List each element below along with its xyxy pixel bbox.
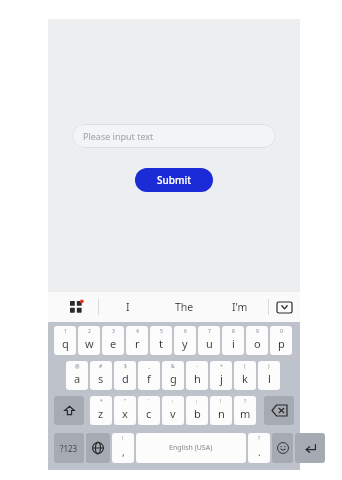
button[interactable]: 8 [222, 326, 244, 355]
staticText: i [232, 336, 235, 351]
staticText: ) [268, 363, 270, 370]
staticText: @ [75, 363, 80, 370]
button[interactable]: 4 [126, 326, 148, 355]
staticText: x [122, 406, 128, 421]
button[interactable]: 1 [54, 326, 76, 355]
button[interactable]: 5 [150, 326, 172, 355]
staticText: # [99, 363, 103, 370]
button[interactable]: 3 [102, 326, 124, 355]
button[interactable]: * [90, 396, 112, 425]
button[interactable]: Submit [135, 168, 213, 192]
button[interactable]: ' [138, 396, 160, 425]
staticText: u [206, 336, 213, 351]
staticText: v [170, 406, 176, 421]
staticText: . [258, 445, 261, 459]
staticText: English (USA) [169, 443, 213, 453]
button[interactable]: Change language [86, 433, 110, 463]
staticText: * [100, 398, 103, 405]
staticText: $ [124, 363, 127, 370]
button[interactable]: ; [186, 396, 208, 425]
button[interactable]: + [210, 361, 232, 390]
staticText: 8 [232, 328, 235, 335]
button[interactable]: Keyboard options [58, 292, 94, 322]
button[interactable]: ) [258, 361, 280, 390]
button[interactable]: $ [114, 361, 136, 390]
button[interactable]: ( [234, 361, 256, 390]
staticText: o [254, 336, 261, 351]
staticText: y [182, 336, 188, 351]
button[interactable]: I'm [212, 292, 268, 322]
button[interactable]: 0 [270, 326, 292, 355]
button[interactable]: English (USA) [136, 433, 246, 463]
staticText: n [218, 406, 225, 421]
button[interactable]: _ [138, 361, 160, 390]
staticText: 9 [256, 328, 259, 335]
staticText: Submit [157, 173, 191, 187]
button[interactable]: ?123 [54, 433, 84, 463]
staticText: c [146, 406, 152, 421]
button[interactable]: Enter [295, 433, 325, 463]
staticText: 2 [88, 328, 91, 335]
button[interactable]: ! [210, 396, 232, 425]
button[interactable]: 2 [78, 326, 100, 355]
staticText: p [278, 336, 285, 351]
staticText: 4 [136, 328, 139, 335]
staticText: t [159, 336, 163, 351]
button[interactable]: I [100, 292, 156, 322]
staticText: s [98, 371, 104, 386]
staticText: ? [244, 398, 247, 405]
staticText: f [147, 371, 151, 386]
button[interactable]: Backspace [264, 396, 294, 425]
staticText: a [74, 371, 81, 386]
staticText: ! [220, 398, 222, 405]
staticText: m [240, 406, 251, 421]
staticText: The [175, 300, 194, 314]
button[interactable]: " [114, 396, 136, 425]
staticText: ; [196, 398, 198, 405]
button[interactable]: ? [234, 396, 256, 425]
staticText: ' [148, 398, 150, 405]
staticText: d [122, 371, 129, 386]
button[interactable]: Shift [54, 396, 84, 425]
button[interactable]: - [186, 361, 208, 390]
button[interactable]: @ [66, 361, 88, 390]
staticText: , [122, 445, 125, 459]
staticText: I [126, 300, 130, 314]
staticText: 7 [208, 328, 211, 335]
staticText: l [268, 371, 271, 386]
staticText: ?123 [60, 443, 78, 454]
staticText: 3 [112, 328, 115, 335]
staticText: + [220, 363, 223, 370]
staticText: ( [244, 363, 246, 370]
staticText: g [170, 371, 177, 386]
staticText: r [135, 336, 140, 351]
staticText: ? [258, 435, 261, 442]
button[interactable]: 7 [198, 326, 220, 355]
staticText: h [194, 371, 201, 386]
button[interactable]: & [162, 361, 184, 390]
button[interactable]: # [90, 361, 112, 390]
staticText: ! [122, 435, 124, 442]
button[interactable]: Emoji [272, 433, 293, 463]
staticText: w [85, 336, 94, 351]
staticText: : [172, 398, 174, 405]
staticText: " [124, 398, 127, 405]
button[interactable]: ! [112, 433, 134, 463]
staticText: q [62, 336, 69, 351]
staticText: 0 [280, 328, 283, 335]
staticText: I'm [232, 300, 248, 314]
button[interactable]: ? [248, 433, 270, 463]
staticText: j [220, 371, 223, 386]
staticText: z [98, 406, 104, 421]
button[interactable]: 9 [246, 326, 268, 355]
staticText: k [242, 371, 248, 386]
staticText: 1 [64, 328, 67, 335]
button[interactable]: 6 [174, 326, 196, 355]
staticText: _ [148, 363, 151, 370]
button[interactable]: Hide keyboard [269, 292, 300, 322]
button[interactable]: : [162, 396, 184, 425]
staticText: 6 [184, 328, 187, 335]
button[interactable]: Please input text [72, 124, 276, 148]
button[interactable]: The [156, 292, 212, 322]
staticText: - [196, 363, 198, 370]
